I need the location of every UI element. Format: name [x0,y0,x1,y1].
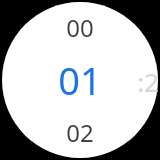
button[interactable]: 01 [58,54,102,106]
staticText: :29 [137,64,160,99]
staticText: 02 [66,116,94,149]
button[interactable]: 00 [66,11,94,44]
staticText: 01 [58,54,102,106]
button[interactable]: Minutes [137,64,160,99]
staticText: 00 [66,11,94,44]
button[interactable]: 02 [66,116,94,149]
